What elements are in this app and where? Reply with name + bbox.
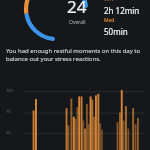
staticText: 2h 12min	[104, 5, 140, 16]
button[interactable]: Stress level chart	[0, 68, 150, 150]
staticText: Med	[104, 17, 115, 24]
staticText: Overall	[69, 19, 86, 26]
staticText: 100	[6, 88, 13, 93]
staticText: 50min	[104, 26, 128, 37]
staticText: 24	[67, 0, 87, 18]
staticText: Low	[104, 0, 114, 3]
button[interactable]: Stress score 24 overall	[0, 0, 150, 42]
staticText: 50	[6, 130, 11, 135]
staticText: 75	[6, 109, 11, 114]
button[interactable]: You had enough restful moments on this d…	[6, 47, 144, 63]
staticText: You had enough restful moments on this d…	[6, 47, 144, 63]
